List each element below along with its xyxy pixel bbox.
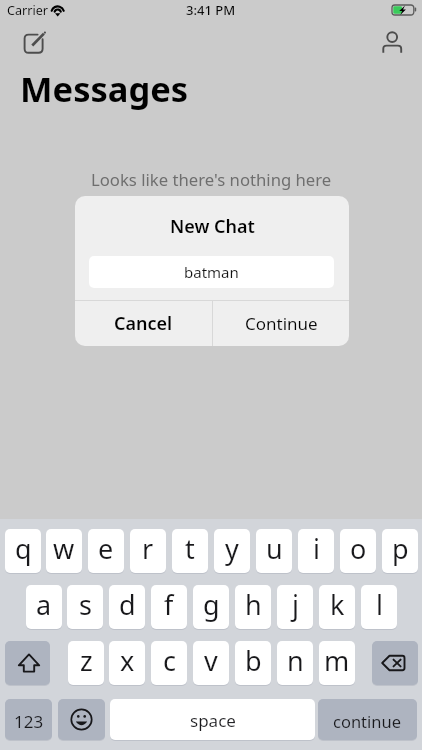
staticText: 123 bbox=[14, 710, 44, 733]
button[interactable]: y bbox=[214, 529, 250, 573]
button[interactable]: Backspace bbox=[372, 641, 418, 685]
button[interactable]: space bbox=[110, 699, 315, 740]
staticText: c bbox=[163, 642, 176, 679]
staticText: 3:41 PM bbox=[186, 1, 236, 19]
staticText: New Chat bbox=[170, 214, 255, 239]
button[interactable]: q bbox=[5, 529, 41, 573]
staticText: space bbox=[190, 709, 236, 732]
staticText: Cancel bbox=[114, 311, 173, 336]
staticText: p bbox=[392, 530, 409, 567]
staticText: o bbox=[350, 530, 367, 567]
button[interactable]: x bbox=[109, 641, 145, 685]
button[interactable]: 123 bbox=[5, 699, 52, 740]
button[interactable]: Emoji bbox=[58, 699, 105, 740]
button[interactable]: k bbox=[319, 585, 355, 629]
staticText: b bbox=[245, 642, 262, 679]
staticText: g bbox=[203, 586, 220, 623]
staticText: a bbox=[36, 586, 52, 623]
button[interactable]: Cancel bbox=[75, 301, 212, 346]
button[interactable]: w bbox=[46, 529, 82, 573]
staticText: t bbox=[185, 530, 195, 567]
staticText: i bbox=[313, 530, 320, 567]
staticText: k bbox=[330, 586, 345, 623]
staticText: j bbox=[292, 586, 299, 623]
staticText: v bbox=[204, 642, 218, 679]
button[interactable]: z bbox=[68, 641, 104, 685]
staticText: e bbox=[98, 530, 114, 567]
button[interactable]: New message bbox=[17, 27, 49, 59]
staticText: z bbox=[80, 642, 93, 679]
button[interactable]: e bbox=[88, 529, 124, 573]
button[interactable]: t bbox=[172, 529, 208, 573]
staticText: Carrier bbox=[7, 2, 48, 19]
button[interactable]: o bbox=[340, 529, 376, 573]
staticText: y bbox=[225, 530, 239, 567]
staticText: d bbox=[119, 586, 136, 623]
staticText: m bbox=[324, 642, 350, 679]
button[interactable]: v bbox=[193, 641, 229, 685]
staticText: continue bbox=[333, 710, 402, 732]
staticText: Continue bbox=[245, 312, 318, 335]
button[interactable]: m bbox=[319, 641, 355, 685]
button[interactable]: c bbox=[151, 641, 187, 685]
staticText: Looks like there's nothing here bbox=[91, 168, 332, 191]
staticText: r bbox=[142, 530, 154, 567]
button[interactable]: Shift bbox=[5, 641, 50, 685]
staticText: u bbox=[266, 530, 283, 567]
button[interactable]: d bbox=[109, 585, 145, 629]
staticText: f bbox=[164, 586, 174, 623]
button[interactable]: r bbox=[130, 529, 166, 573]
button[interactable]: u bbox=[256, 529, 292, 573]
button[interactable]: batman bbox=[89, 256, 334, 288]
staticText: batman bbox=[184, 262, 239, 282]
staticText: w bbox=[53, 530, 75, 567]
staticText: x bbox=[120, 642, 135, 679]
button[interactable]: a bbox=[26, 585, 62, 629]
button[interactable]: f bbox=[151, 585, 187, 629]
staticText: l bbox=[376, 586, 383, 623]
button[interactable]: g bbox=[193, 585, 229, 629]
button[interactable]: s bbox=[67, 585, 103, 629]
button[interactable]: n bbox=[277, 641, 313, 685]
staticText: q bbox=[15, 530, 32, 567]
staticText: h bbox=[245, 586, 262, 623]
button[interactable]: h bbox=[235, 585, 271, 629]
button[interactable]: Continue bbox=[213, 301, 349, 346]
button[interactable]: b bbox=[235, 641, 271, 685]
button[interactable]: Profile bbox=[378, 25, 407, 54]
staticText: n bbox=[287, 642, 304, 679]
button[interactable]: i bbox=[298, 529, 334, 573]
button[interactable]: l bbox=[361, 585, 397, 629]
button[interactable]: j bbox=[277, 585, 313, 629]
button[interactable]: continue bbox=[318, 699, 417, 740]
button[interactable]: p bbox=[382, 529, 418, 573]
staticText: s bbox=[79, 586, 92, 623]
staticText: Messages bbox=[20, 65, 189, 112]
